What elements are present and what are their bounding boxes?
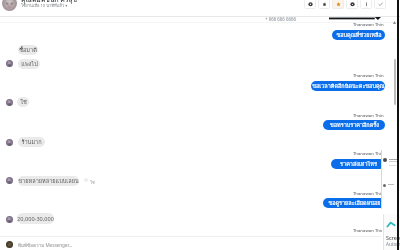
staticText: Thanawan Thin	[353, 73, 384, 77]
button[interactable]: Toolbar action	[304, 0, 316, 9]
staticText: คุณพิมพ์ชนก ศรีสุข	[21, 0, 78, 5]
staticText: 20,000-30,000	[17, 215, 54, 223]
button[interactable]: ขอทราบราคาอีกครั้ง	[323, 120, 385, 130]
button[interactable]: ร้านมาก	[18, 137, 45, 147]
button[interactable]: Sender avatar	[6, 216, 13, 223]
staticText: Autom	[386, 241, 400, 247]
staticText: Scree	[386, 234, 400, 241]
staticText: Thanawan Thin	[353, 22, 384, 26]
button[interactable]: Toolbar action	[332, 0, 344, 9]
button[interactable]: ขอดูรายละเอียดหน่อย	[323, 198, 386, 208]
button[interactable]: แพงไป	[18, 59, 40, 69]
staticText: ใช่	[20, 98, 27, 107]
staticText: ขอทราบราคาอีกครั้ง	[330, 121, 379, 130]
staticText: ขอบคุณที่ช่วยเหลือ	[336, 31, 382, 40]
staticText: ซื้อมาดี	[19, 46, 37, 55]
button[interactable]: Sender avatar	[6, 60, 13, 67]
button[interactable]: Toolbar action	[374, 0, 386, 9]
button[interactable]: React	[84, 178, 88, 182]
staticText: ใช่	[90, 179, 95, 186]
staticText: ราคาส่งเท่าไหร่	[340, 160, 377, 169]
button[interactable]: Toolbar action	[318, 0, 330, 9]
button[interactable]: Toolbar action	[346, 0, 358, 9]
staticText: ขอดูรายละเอียดหน่อย	[328, 199, 381, 208]
staticText: ขอเวลาคิดอีกนิดนะคะขอบคุณ	[312, 82, 385, 91]
button[interactable]: Sender avatar	[6, 99, 13, 106]
staticText: แพงไป	[21, 60, 38, 69]
staticText: ร้านมาก	[21, 138, 42, 147]
staticText: Thanawan Thin	[353, 228, 384, 232]
button[interactable]: ขอบคุณที่ช่วยเหลือ	[332, 30, 385, 40]
staticText: Thanawan Thin	[353, 191, 384, 195]
button[interactable]: ขอเวลาคิดอีกนิดนะคะขอบคุณ	[311, 81, 385, 91]
staticText: Thanawan Thin	[353, 151, 384, 155]
button[interactable]: ราคาส่งเท่าไหร่	[331, 159, 385, 169]
button[interactable]: Toolbar action	[360, 0, 372, 9]
button[interactable]: ใช่	[17, 97, 29, 107]
staticText: ขายหลายหลายแบบเลยนะ	[18, 177, 79, 186]
button[interactable]: Profile	[2, 0, 17, 11]
button[interactable]: Your profile	[6, 241, 13, 248]
staticText: ใช้งานเมื่อ 10 นาทีที่แล้ว ▾	[21, 2, 68, 9]
button[interactable]: ขายหลายหลายแบบเลยนะ	[18, 176, 79, 186]
staticText: Thanawan Thin	[353, 113, 384, 117]
button[interactable]: ซื้อมาดี	[18, 45, 38, 55]
button[interactable]: Sender avatar	[6, 177, 13, 184]
button[interactable]: Sender avatar	[6, 139, 13, 146]
staticText: พิมพ์ข้อความ Messenger...	[18, 242, 73, 249]
staticText: + 666 666 6666	[265, 16, 297, 22]
button[interactable]: 20,000-30,000	[17, 213, 54, 224]
